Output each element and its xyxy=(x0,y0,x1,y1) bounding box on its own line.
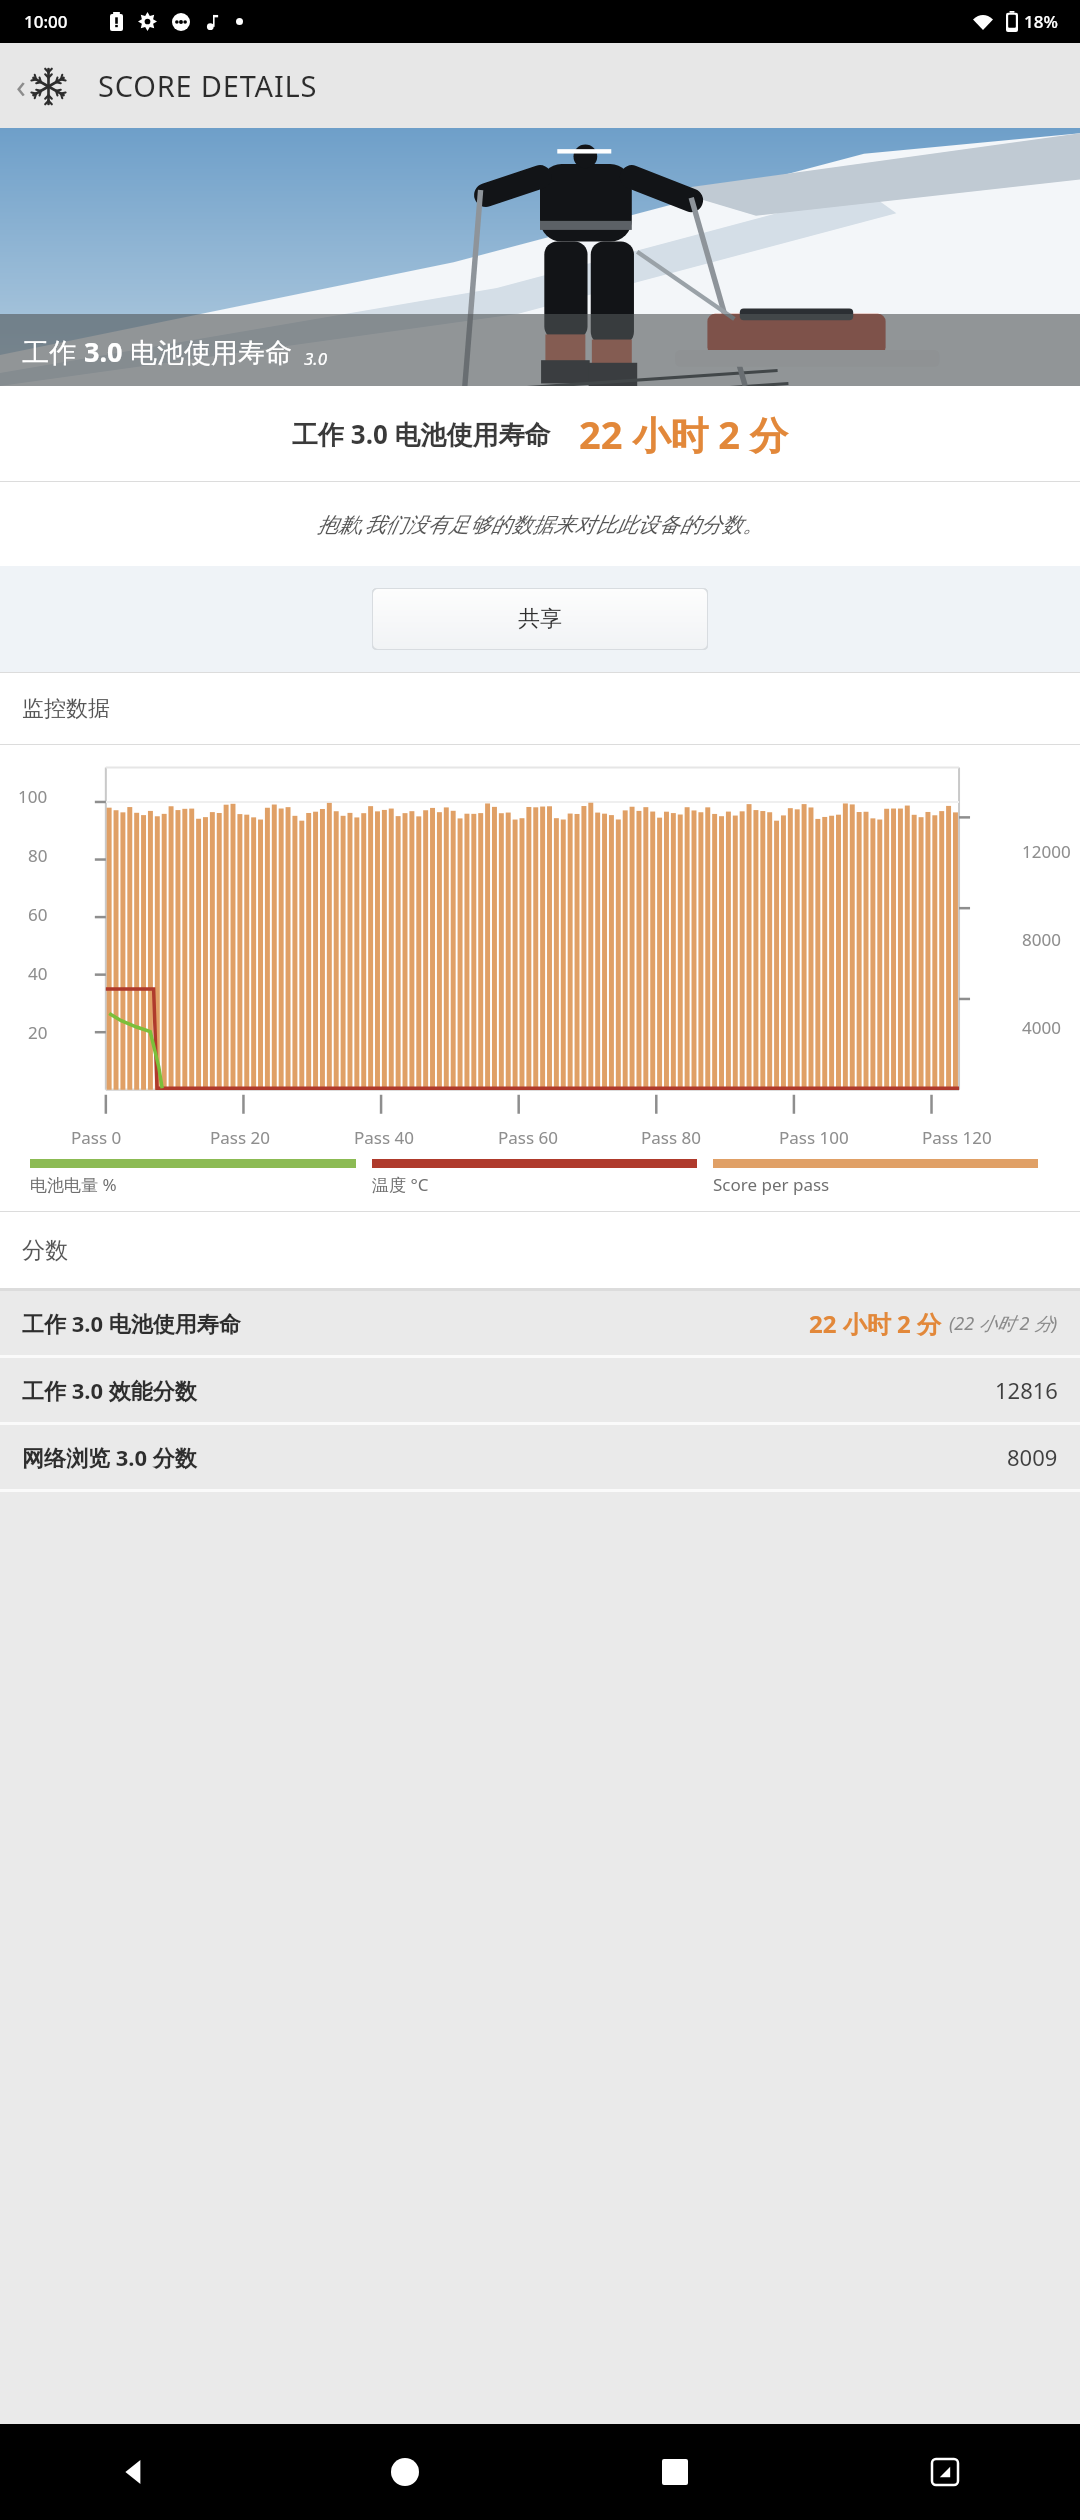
staticText: 12816 xyxy=(995,1375,1058,1405)
button[interactable]: Back xyxy=(0,2424,270,2520)
staticText: 工作 3.0 效能分数 xyxy=(22,1375,197,1405)
staticText: ‹ xyxy=(16,64,26,108)
staticText: 共享 xyxy=(518,605,562,633)
staticText: Pass 20 xyxy=(210,1126,270,1149)
staticText: 抱歉,我们没有足够的数据来对比此设备的分数。 xyxy=(317,510,764,539)
button[interactable]: 共享 xyxy=(372,588,708,650)
staticText: Pass 100 xyxy=(779,1126,849,1149)
staticText: 工作 xyxy=(22,333,84,370)
staticText: 8000 xyxy=(1022,928,1061,951)
staticText: 18% xyxy=(1024,10,1058,33)
staticText: 工作 3.0 电池使用寿命 xyxy=(22,1308,241,1338)
button[interactable]: Back xyxy=(8,56,75,116)
staticText: 3.0 xyxy=(84,333,123,370)
staticText: 温度 °C xyxy=(372,1173,429,1196)
button[interactable]: 工作 3.0 电池使用寿命 xyxy=(0,1291,1080,1355)
staticText: 网络浏览 3.0 分数 xyxy=(22,1442,197,1472)
staticText: 10:00 xyxy=(24,10,68,33)
staticText: Pass 40 xyxy=(354,1126,414,1149)
button[interactable]: 工作 3.0 效能分数 xyxy=(0,1358,1080,1422)
staticText: Pass 0 xyxy=(71,1126,122,1149)
button[interactable]: Home xyxy=(270,2424,540,2520)
staticText: 80 xyxy=(28,844,48,867)
staticText: Pass 120 xyxy=(922,1126,992,1149)
staticText: Pass 60 xyxy=(498,1126,558,1149)
staticText: 8009 xyxy=(1007,1442,1058,1472)
staticText: (22 小时 2 分) xyxy=(949,1311,1058,1336)
staticText: 22 小时 2 分 xyxy=(579,408,788,460)
staticText: 3.0 xyxy=(304,347,328,370)
staticText: Pass 80 xyxy=(641,1126,701,1149)
staticText: 工作 3.0 电池使用寿命 xyxy=(292,416,551,452)
staticText: 60 xyxy=(28,903,48,926)
staticText: 电池使用寿命 xyxy=(123,333,293,370)
staticText: 100 xyxy=(18,785,48,808)
button[interactable]: Recents xyxy=(540,2424,810,2520)
staticText: 40 xyxy=(28,962,48,985)
button[interactable]: Rotate xyxy=(810,2424,1080,2520)
staticText: 4000 xyxy=(1022,1016,1061,1039)
staticText: 电池电量 % xyxy=(30,1173,117,1196)
staticText: 12000 xyxy=(1022,840,1071,863)
staticText: 分数 xyxy=(22,1236,68,1265)
button[interactable]: 网络浏览 3.0 分数 xyxy=(0,1425,1080,1489)
staticText: 20 xyxy=(28,1021,48,1044)
staticText: 22 小时 2 分 xyxy=(809,1307,941,1340)
staticText: SCORE DETAILS xyxy=(98,66,318,105)
staticText: 监控数据 xyxy=(22,695,110,723)
staticText: Score per pass xyxy=(713,1173,830,1196)
